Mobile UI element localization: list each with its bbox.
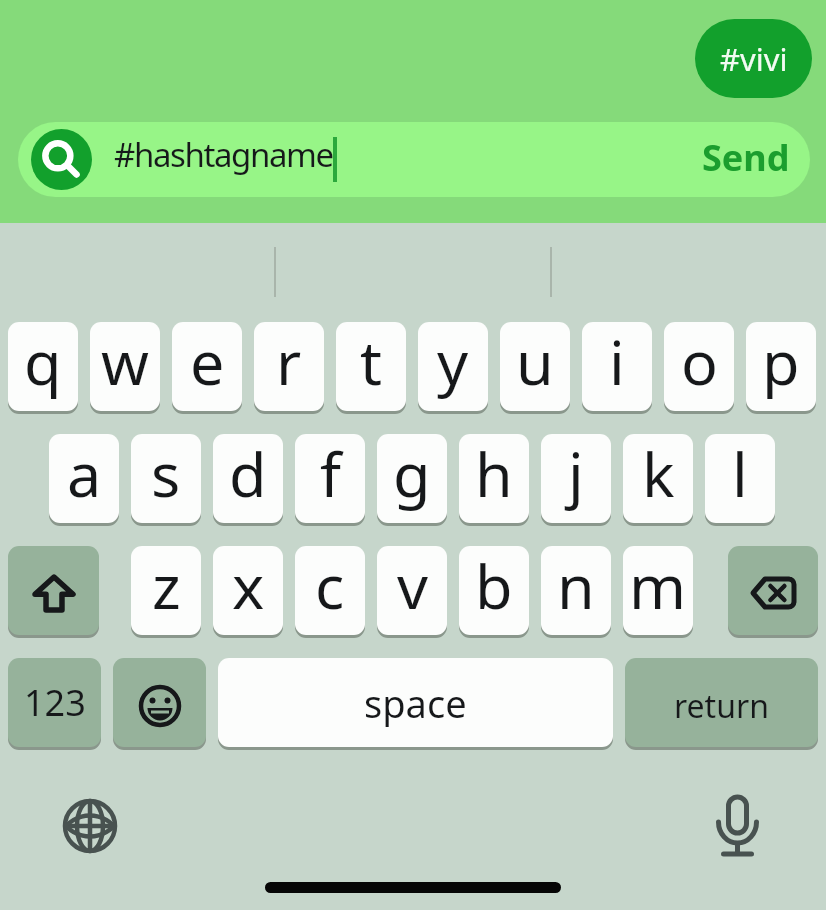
staticText: k: [642, 434, 675, 515]
button[interactable]: #hashtagname: [18, 122, 810, 197]
button[interactable]: o: [664, 322, 734, 411]
staticText: 123: [24, 678, 86, 727]
button[interactable]: [8, 546, 99, 635]
staticText: j: [568, 434, 584, 515]
staticText: x: [232, 546, 265, 627]
staticText: b: [475, 546, 513, 627]
button[interactable]: j: [541, 434, 611, 523]
button[interactable]: return: [625, 658, 818, 747]
button[interactable]: [728, 546, 818, 635]
button[interactable]: x: [213, 546, 283, 635]
staticText: p: [762, 322, 800, 403]
staticText: d: [229, 434, 267, 515]
button[interactable]: u: [500, 322, 570, 411]
button[interactable]: a: [49, 434, 119, 523]
button[interactable]: space: [218, 658, 613, 747]
button[interactable]: g: [377, 434, 447, 523]
staticText: Send: [702, 133, 790, 182]
button[interactable]: i: [582, 322, 652, 411]
staticText: g: [393, 434, 431, 515]
button[interactable]: q: [8, 322, 78, 411]
staticText: v: [397, 546, 428, 627]
staticText: e: [190, 322, 225, 403]
staticText: z: [152, 546, 181, 627]
button[interactable]: c: [295, 546, 365, 635]
button[interactable]: [710, 793, 765, 861]
button[interactable]: y: [418, 322, 488, 411]
button[interactable]: f: [295, 434, 365, 523]
button[interactable]: p: [746, 322, 816, 411]
button[interactable]: z: [131, 546, 201, 635]
button[interactable]: b: [459, 546, 529, 635]
staticText: #vivi: [720, 38, 788, 80]
staticText: a: [67, 434, 102, 515]
staticText: m: [629, 546, 687, 627]
staticText: c: [315, 546, 345, 627]
button[interactable]: [113, 658, 206, 747]
button[interactable]: #vivi: [695, 19, 812, 98]
staticText: l: [732, 434, 748, 515]
staticText: f: [320, 434, 341, 515]
button[interactable]: k: [623, 434, 693, 523]
staticText: h: [475, 434, 513, 515]
staticText: #hashtagname: [114, 132, 333, 177]
staticText: i: [609, 322, 625, 403]
button[interactable]: 123: [8, 658, 101, 747]
staticText: r: [276, 322, 302, 403]
staticText: y: [437, 322, 469, 403]
staticText: t: [360, 322, 383, 403]
button[interactable]: n: [541, 546, 611, 635]
button[interactable]: [62, 798, 118, 854]
button[interactable]: h: [459, 434, 529, 523]
staticText: w: [101, 322, 149, 403]
button[interactable]: m: [623, 546, 693, 635]
button[interactable]: d: [213, 434, 283, 523]
button[interactable]: t: [336, 322, 406, 411]
staticText: space: [364, 677, 467, 729]
button[interactable]: r: [254, 322, 324, 411]
staticText: u: [516, 322, 554, 403]
button[interactable]: l: [705, 434, 775, 523]
button[interactable]: s: [131, 434, 201, 523]
button[interactable]: e: [172, 322, 242, 411]
staticText: n: [557, 546, 595, 627]
button[interactable]: v: [377, 546, 447, 635]
staticText: return: [674, 684, 769, 728]
button[interactable]: w: [90, 322, 160, 411]
staticText: o: [681, 322, 718, 403]
staticText: q: [24, 322, 62, 403]
staticText: s: [151, 434, 181, 515]
